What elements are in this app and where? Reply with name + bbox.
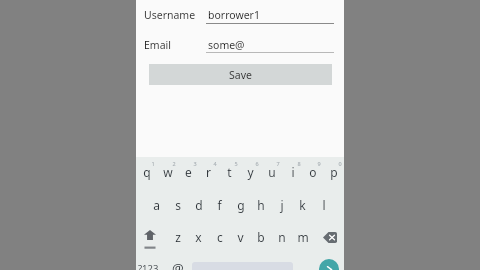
staticText: p	[330, 164, 338, 180]
button[interactable]: z	[167, 222, 188, 254]
staticText: some@	[208, 38, 245, 52]
button[interactable]: 7	[261, 157, 282, 189]
staticText: c	[217, 229, 223, 245]
button[interactable]: 9	[302, 157, 323, 189]
staticText: 8	[295, 160, 303, 167]
staticText: n	[278, 229, 286, 245]
staticText: borrower1	[208, 8, 260, 22]
staticText: m	[297, 229, 309, 245]
button[interactable]: ?123	[133, 254, 164, 270]
button[interactable]: j	[271, 189, 292, 221]
staticText: Save	[229, 68, 252, 82]
staticText: ?123	[138, 262, 159, 270]
staticText: v	[237, 229, 244, 245]
button[interactable]: d	[188, 189, 209, 221]
staticText: l	[322, 197, 326, 213]
button[interactable]: Backspace	[313, 222, 344, 254]
button[interactable]: 1	[136, 157, 157, 189]
button[interactable]: g	[230, 189, 251, 221]
button[interactable]: 3	[178, 157, 199, 189]
staticText: j	[280, 197, 284, 213]
button[interactable]: k	[292, 189, 313, 221]
staticText: y	[247, 164, 254, 180]
button[interactable]: f	[209, 189, 230, 221]
staticText: e	[185, 164, 192, 180]
button[interactable]: h	[250, 189, 271, 221]
staticText: 9	[315, 160, 323, 167]
staticText: z	[175, 229, 181, 245]
button[interactable]: m	[292, 222, 313, 254]
button[interactable]: b	[250, 222, 271, 254]
staticText: q	[143, 164, 151, 180]
staticText: 4	[211, 160, 219, 167]
button[interactable]: 0	[323, 157, 344, 189]
button[interactable]: @	[167, 254, 188, 270]
staticText: g	[237, 197, 245, 213]
button[interactable]: v	[230, 222, 251, 254]
button[interactable]: x	[188, 222, 209, 254]
staticText: t	[227, 164, 232, 180]
staticText: 1	[149, 160, 157, 167]
staticText: Email	[144, 38, 171, 52]
staticText: 7	[274, 160, 282, 167]
staticText: a	[153, 197, 160, 213]
button[interactable]: 2	[157, 157, 178, 189]
staticText: u	[268, 164, 276, 180]
button[interactable]: l	[313, 189, 334, 221]
staticText: 2	[170, 160, 178, 167]
staticText: 0	[336, 160, 344, 167]
button[interactable]: 5	[219, 157, 240, 189]
staticText: b	[257, 229, 265, 245]
button[interactable]: Shift	[134, 222, 165, 254]
staticText: r	[206, 164, 211, 180]
staticText: i	[291, 164, 295, 180]
staticText: h	[257, 197, 265, 213]
staticText: Username	[144, 8, 196, 22]
button[interactable]: 4	[198, 157, 219, 189]
staticText: d	[195, 197, 203, 213]
button[interactable]: a	[146, 189, 167, 221]
button[interactable]: Send	[319, 259, 339, 270]
staticText: o	[309, 164, 317, 180]
staticText: 6	[253, 160, 261, 167]
button[interactable]: 6	[240, 157, 261, 189]
staticText: @	[172, 259, 184, 270]
staticText: f	[217, 197, 222, 213]
staticText: s	[175, 197, 181, 213]
button[interactable]: n	[271, 222, 292, 254]
staticText: w	[163, 164, 173, 180]
staticText: x	[195, 229, 202, 245]
button[interactable]: Save	[149, 64, 332, 85]
staticText: k	[299, 197, 306, 213]
button[interactable]: c	[209, 222, 230, 254]
button[interactable]: s	[167, 189, 188, 221]
staticText: 3	[191, 160, 199, 167]
button[interactable]: 8	[282, 157, 303, 189]
staticText: 5	[232, 160, 240, 167]
